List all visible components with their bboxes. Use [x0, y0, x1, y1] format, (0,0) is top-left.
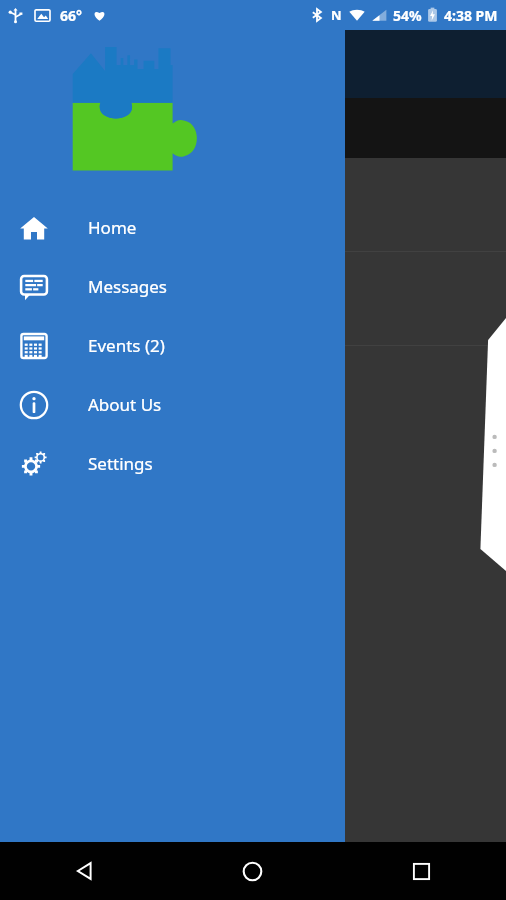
button[interactable]: Messages	[0, 257, 345, 316]
button[interactable]: Recents	[337, 842, 506, 900]
staticText: N	[331, 6, 342, 24]
staticText: 4:30 PM	[16, 214, 80, 237]
button[interactable]: Back	[0, 842, 168, 900]
button[interactable]: Home	[0, 198, 345, 257]
button[interactable]: Home	[168, 842, 337, 900]
button[interactable]: Events (2)	[0, 316, 345, 375]
button[interactable]: About Us	[0, 375, 345, 434]
staticText: About Us	[88, 393, 162, 416]
staticText: 4:38 PM	[444, 6, 498, 25]
staticText: 66°	[60, 6, 82, 25]
button[interactable]: Settings	[0, 434, 345, 493]
staticText: Home	[88, 216, 137, 239]
staticText: -- Rolex Grand Prix --	[16, 266, 199, 292]
staticText: Events (2)	[88, 334, 165, 357]
staticText: 54%	[393, 6, 422, 25]
staticText: Settings	[88, 452, 153, 475]
staticText: 10:30 AM	[16, 402, 91, 425]
staticText: Messages	[88, 275, 168, 298]
